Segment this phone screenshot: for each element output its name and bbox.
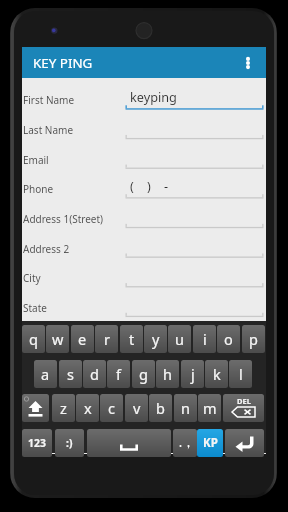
button[interactable]: Address 2: [22, 235, 266, 265]
button[interactable]: t: [120, 325, 143, 353]
staticText: i: [203, 329, 207, 349]
staticText: h: [163, 364, 172, 384]
staticText: 123: [28, 436, 46, 450]
staticText: z: [60, 398, 67, 418]
staticText: l: [239, 364, 243, 384]
button[interactable]: KEY PING: [22, 47, 266, 78]
button[interactable]: q: [22, 325, 45, 353]
button[interactable]: More options: [237, 47, 259, 78]
button[interactable]: Shift: [22, 394, 49, 422]
staticText: KP: [203, 435, 218, 451]
staticText: o: [224, 329, 233, 349]
button[interactable]: c: [100, 394, 123, 422]
staticText: DEL: [237, 396, 251, 406]
staticText: Address 2: [23, 242, 70, 256]
staticText: r: [104, 329, 110, 349]
button[interactable]: 123: [22, 429, 52, 457]
button[interactable]: v: [125, 394, 148, 422]
staticText: Address 1(Street): [23, 212, 104, 226]
button[interactable]: Email: [22, 146, 266, 176]
button[interactable]: Phone: [22, 175, 266, 205]
staticText: u: [175, 329, 184, 349]
staticText: City: [23, 271, 41, 285]
button[interactable]: s: [59, 360, 82, 388]
staticText: f: [116, 364, 121, 384]
button[interactable]: j: [181, 360, 204, 388]
button[interactable]: y: [144, 325, 167, 353]
staticText: :): [66, 436, 73, 450]
staticText: t: [129, 329, 135, 349]
button[interactable]: k: [205, 360, 228, 388]
staticText: Last Name: [23, 123, 74, 137]
staticText: Phone: [23, 182, 54, 196]
button[interactable]: p: [242, 325, 265, 353]
staticText: v: [133, 398, 141, 418]
button[interactable]: x: [76, 394, 99, 422]
button[interactable]: State: [22, 294, 266, 324]
button[interactable]: i: [193, 325, 216, 353]
staticText: d: [90, 364, 99, 384]
button[interactable]: l: [229, 360, 252, 388]
button[interactable]: Space: [87, 429, 171, 457]
staticText: keyping: [130, 88, 177, 105]
button[interactable]: Last Name: [22, 116, 266, 146]
staticText: State: [23, 301, 47, 315]
button[interactable]: g: [132, 360, 155, 388]
button[interactable]: z: [52, 394, 75, 422]
staticText: n: [181, 398, 190, 418]
staticText: q: [29, 329, 38, 349]
button[interactable]: First Name: [22, 86, 266, 116]
staticText: y: [152, 329, 160, 349]
button[interactable]: b: [149, 394, 172, 422]
staticText: j: [191, 364, 195, 384]
staticText: KEY PING: [33, 54, 93, 72]
button[interactable]: u: [168, 325, 191, 353]
staticText: ( ) -: [130, 177, 169, 194]
staticText: e: [78, 329, 87, 349]
button[interactable]: r: [95, 325, 118, 353]
button[interactable]: a: [34, 360, 57, 388]
button[interactable]: City: [22, 264, 266, 294]
staticText: Email: [23, 153, 49, 167]
staticText: x: [84, 398, 92, 418]
button[interactable]: w: [46, 325, 69, 353]
staticText: p: [249, 329, 258, 349]
button[interactable]: Delete: [223, 394, 264, 422]
staticText: w: [52, 329, 64, 349]
button[interactable]: n: [174, 394, 197, 422]
staticText: First Name: [23, 93, 75, 107]
button[interactable]: e: [71, 325, 94, 353]
staticText: a: [41, 364, 50, 384]
staticText: b: [156, 398, 165, 418]
button[interactable]: KP: [197, 429, 223, 457]
button[interactable]: Address 1(Street): [22, 205, 266, 235]
staticText: c: [108, 398, 115, 418]
button[interactable]: d: [83, 360, 106, 388]
button[interactable]: f: [107, 360, 130, 388]
staticText: k: [213, 364, 221, 384]
button[interactable]: o: [217, 325, 240, 353]
staticText: m: [203, 398, 217, 418]
button[interactable]: m: [198, 394, 221, 422]
button[interactable]: :): [55, 429, 84, 457]
button[interactable]: h: [156, 360, 179, 388]
staticText: s: [67, 364, 74, 384]
button[interactable]: Enter: [225, 429, 264, 457]
button[interactable]: Enter: [173, 429, 197, 457]
staticText: g: [139, 364, 148, 384]
